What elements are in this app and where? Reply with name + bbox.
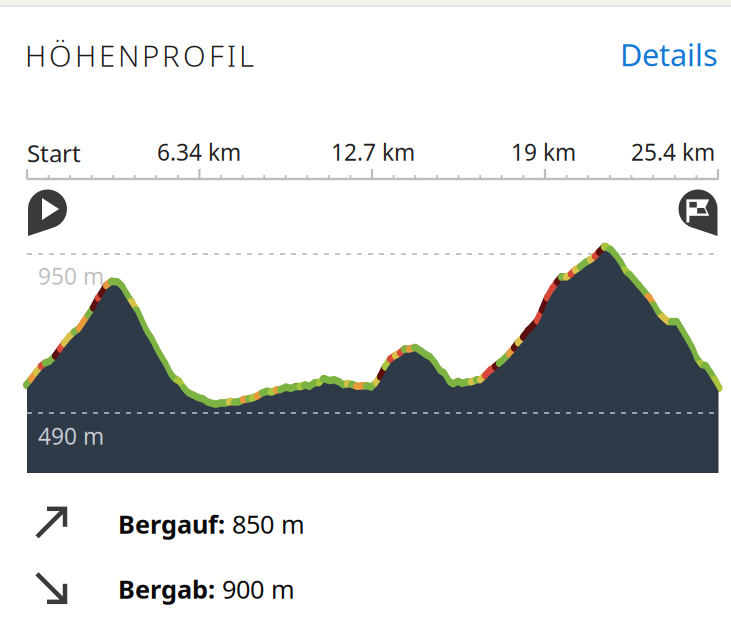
staticText: 490 m (38, 421, 104, 451)
staticText: 950 m (38, 261, 104, 291)
staticText: Bergab: (118, 572, 215, 606)
staticText: 12.7 km (331, 137, 415, 167)
staticText: H Ö H E N P R O F I L (25, 36, 254, 75)
staticText: Details (620, 34, 718, 75)
staticText: 25.4 km (631, 137, 715, 167)
staticText: 850 m (225, 507, 305, 541)
staticText: 19 km (511, 137, 576, 167)
staticText: 6.34 km (157, 137, 241, 167)
staticText: 900 m (215, 572, 295, 606)
button[interactable]: Details (620, 34, 718, 75)
staticText: Bergauf: (118, 507, 225, 541)
staticText: Start (27, 137, 81, 169)
